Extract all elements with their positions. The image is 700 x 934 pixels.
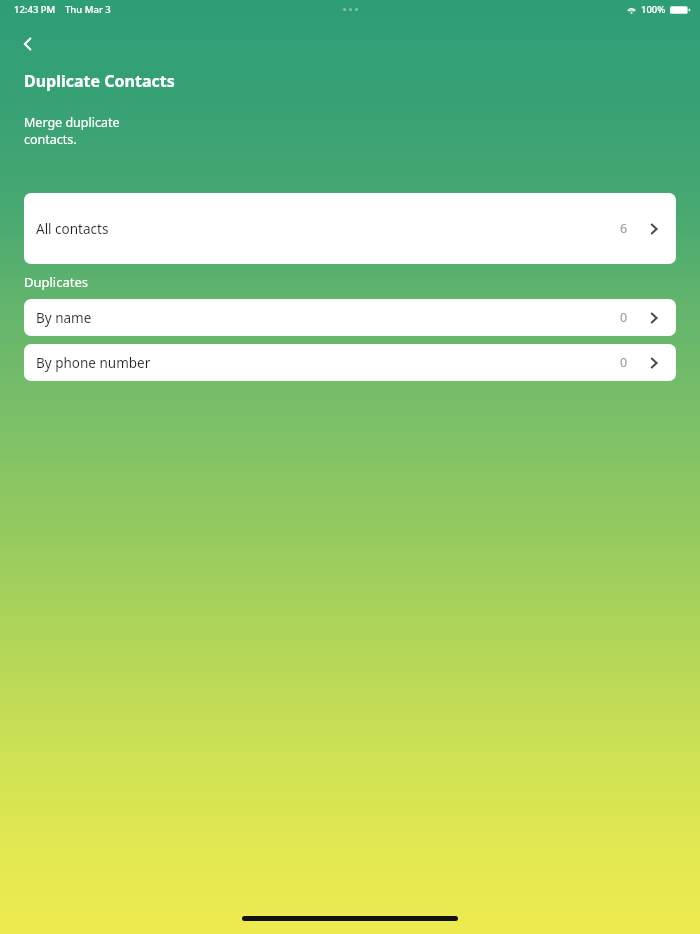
button[interactable]: By phone number [24,344,676,381]
staticText: Thu Mar 3 [65,3,111,16]
staticText: Merge duplicate contacts. [24,114,120,147]
button[interactable]: All contacts [24,193,676,264]
button[interactable]: Back [8,24,48,64]
staticText: 0 [620,309,628,326]
staticText: 12:43 PM [14,3,56,16]
staticText: All contacts [36,220,109,238]
staticText: 6 [620,220,628,237]
staticText: 0 [620,354,628,371]
staticText: 100% [641,3,666,16]
staticText: By phone number [36,354,151,372]
staticText: By name [36,309,92,327]
staticText: Duplicate Contacts [24,70,175,92]
staticText: Duplicates [24,273,89,291]
button[interactable]: By name [24,299,676,336]
